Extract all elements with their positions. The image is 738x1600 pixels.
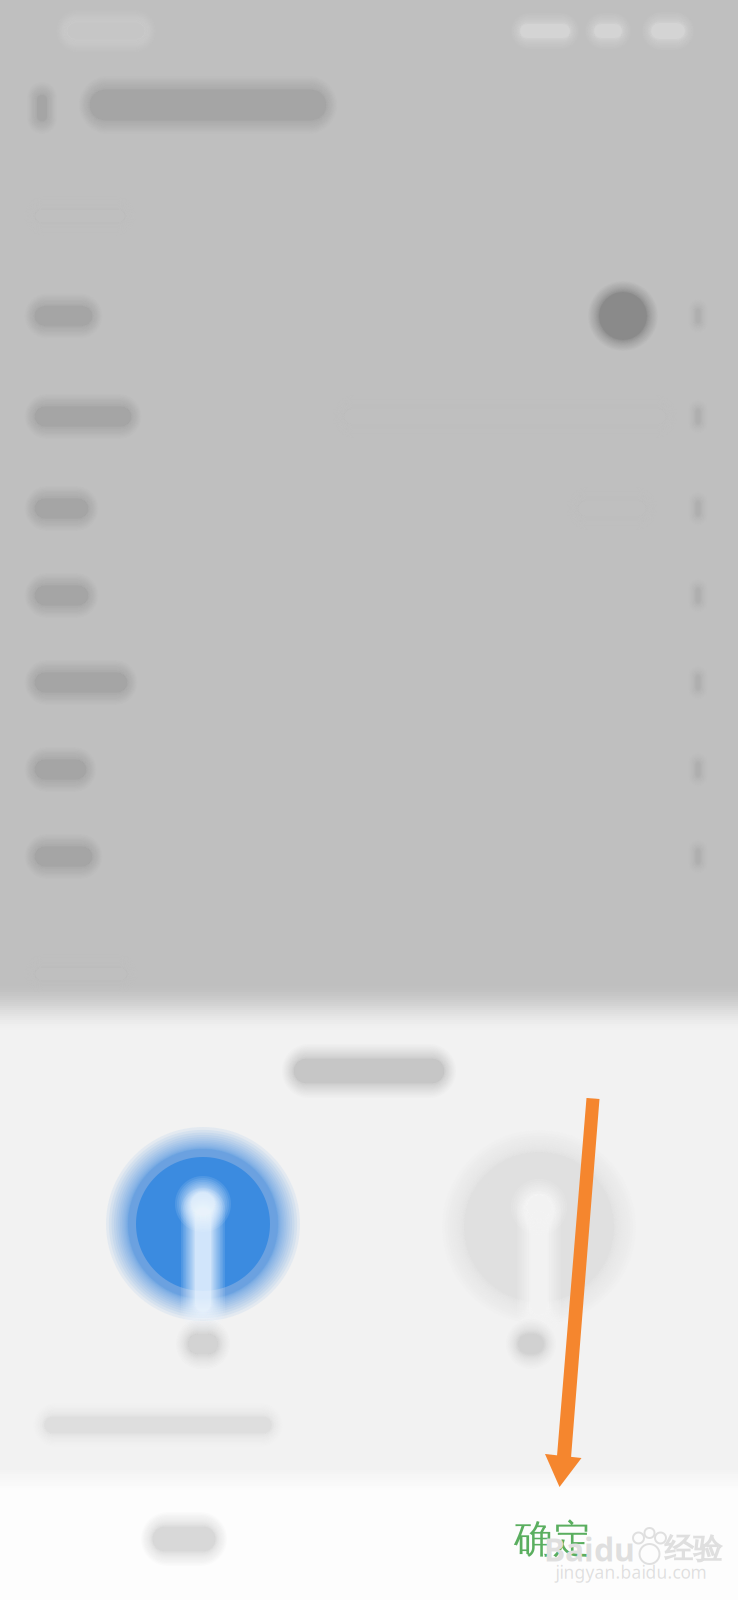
button[interactable]: 自定义头像 [439,1127,639,1327]
button[interactable]: 设置项 [0,726,738,813]
staticText: jingyan.baidu.com [555,1560,706,1583]
staticText: 经验 [664,1531,722,1567]
button[interactable]: 设置项 [0,465,738,552]
button[interactable]: 设置项 [0,813,738,900]
button[interactable]: 取消 [0,1478,368,1600]
staticText: Baidu [544,1528,635,1570]
button[interactable]: 设置项 [0,639,738,726]
button[interactable]: 默认头像，已选中 [103,1124,303,1324]
button[interactable]: 设置项 [0,552,738,639]
button[interactable]: 设置项 [0,368,738,465]
button[interactable]: 设置项 [0,264,738,368]
button[interactable]: 确定 [368,1478,737,1600]
staticText: 确定 [514,1515,592,1563]
